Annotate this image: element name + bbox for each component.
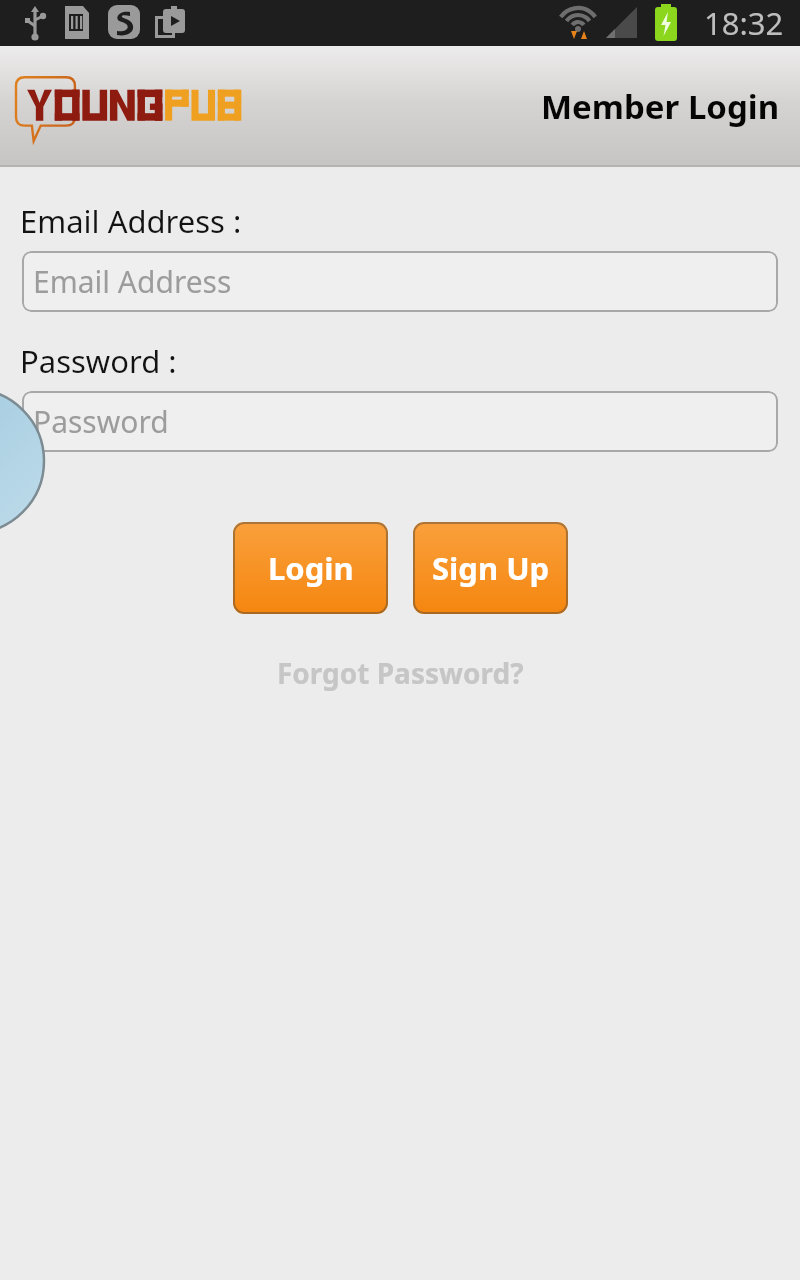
button[interactable]: Email Address bbox=[22, 251, 778, 312]
button[interactable]: Password bbox=[22, 391, 778, 452]
button[interactable]: Sign Up bbox=[413, 522, 568, 614]
button[interactable]: Forgot Password? bbox=[0, 651, 800, 695]
button[interactable]: Login bbox=[233, 522, 388, 614]
staticText: Member Login bbox=[541, 84, 780, 129]
button[interactable]: Open side panel bbox=[0, 387, 46, 535]
staticText: Sign Up bbox=[432, 547, 550, 589]
staticText: Password bbox=[33, 401, 169, 442]
staticText: Login bbox=[268, 547, 354, 589]
staticText: Forgot Password? bbox=[277, 654, 524, 692]
staticText: Email Address bbox=[33, 261, 232, 302]
staticText: 18:32 bbox=[704, 2, 784, 44]
staticText: Email Address : bbox=[20, 200, 242, 242]
staticText: Password : bbox=[20, 340, 177, 382]
